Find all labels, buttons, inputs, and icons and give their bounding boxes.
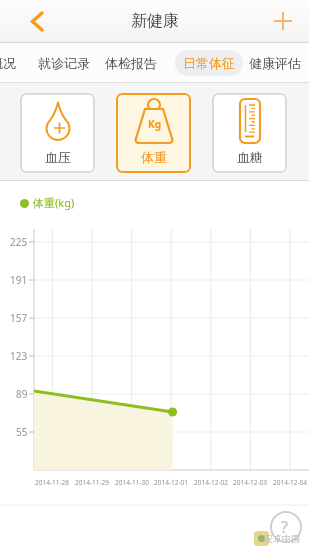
staticText: 日常体征 [183,55,235,71]
staticText: 123 [10,349,28,363]
staticText: 2014-11-28 [35,478,69,487]
staticText: 2014-12-01 [154,478,188,487]
staticText: 2014-12-03 [233,478,267,487]
staticText: 血压 [45,149,71,165]
staticText: 55 [16,425,28,439]
button[interactable]: 血糖 [212,93,287,173]
button[interactable]: 血压 [20,93,95,173]
button[interactable]: 日常体征 [175,50,243,76]
button[interactable]: 概况 [0,55,16,71]
staticText: 89 [16,387,28,401]
staticText: 225 [10,235,28,249]
staticText: 2014-12-04 [273,478,307,487]
staticText: 体重(kg) [33,195,75,210]
staticText: Kg [148,117,161,131]
staticText: 157 [10,311,28,325]
staticText: 新健康 [131,11,179,31]
button[interactable]: 健康评估 [249,55,301,71]
staticText: 体重 [141,149,167,165]
staticText: 血糖 [237,149,263,165]
button[interactable]: 就诊记录 [38,55,90,71]
staticText: 2014-11-29 [75,478,109,487]
staticText: 2014-12-02 [194,478,228,487]
button[interactable]: Kg [116,93,191,173]
staticText: ? [281,516,288,538]
staticText: 2014-11-30 [115,478,149,487]
button[interactable] [22,7,50,35]
staticText: 安卓中国 [264,533,300,544]
button[interactable]: 体检报告 [105,55,157,71]
staticText: 191 [10,273,28,287]
button[interactable] [269,7,297,35]
